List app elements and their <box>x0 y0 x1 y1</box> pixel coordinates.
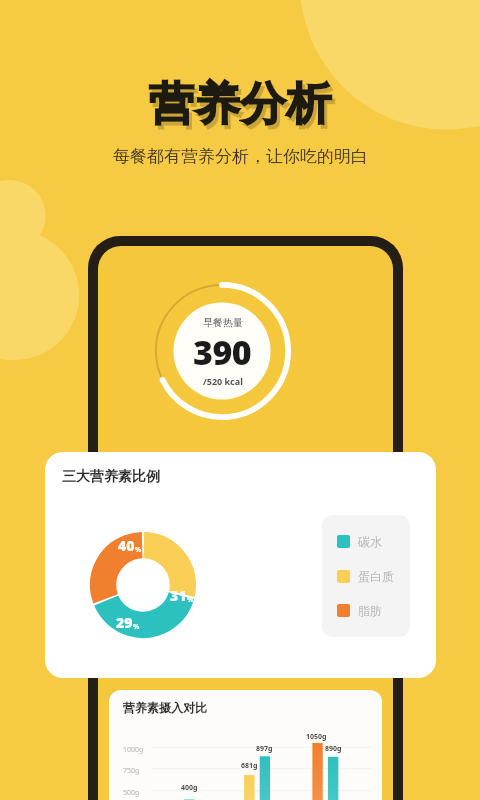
staticText: 早餐热量 <box>203 316 243 329</box>
staticText: 碳水 <box>358 534 382 549</box>
staticText: 390 <box>193 329 252 375</box>
staticText: 500g <box>123 788 140 798</box>
staticText: 营养素摄入对比 <box>123 700 207 715</box>
staticText: /520 kcal <box>203 375 243 387</box>
staticText: % <box>187 595 194 605</box>
staticText: 29 <box>116 613 133 632</box>
button[interactable]: 三大营养素比例 <box>45 452 436 678</box>
staticText: 400g <box>181 783 198 793</box>
button[interactable]: 脂肪 <box>337 603 382 618</box>
button[interactable]: 早餐热量 390 / 520 kcal <box>153 282 291 420</box>
staticText: 1050g <box>306 732 327 742</box>
staticText: 蛋白质 <box>358 569 394 584</box>
staticText: % <box>135 545 142 555</box>
staticText: 890g <box>325 744 342 754</box>
staticText: 每餐都有营养分析，让你吃的明白 <box>113 146 368 167</box>
staticText: % <box>133 622 140 632</box>
button[interactable]: 蛋白质 <box>337 569 394 584</box>
staticText: 1000g <box>123 745 144 755</box>
button[interactable]: 营养素摄入对比 <box>109 690 382 800</box>
button[interactable]: 碳水 <box>337 534 382 549</box>
staticText: 40 <box>118 536 135 555</box>
staticText: 897g <box>256 744 273 754</box>
staticText: 31 <box>170 586 187 605</box>
staticText: 750g <box>123 766 140 776</box>
staticText: 营养分析 <box>148 76 332 133</box>
staticText: 脂肪 <box>358 603 382 618</box>
staticText: 营养分析 <box>151 80 335 137</box>
staticText: 681g <box>241 761 258 771</box>
staticText: 三大营养素比例 <box>62 468 160 486</box>
